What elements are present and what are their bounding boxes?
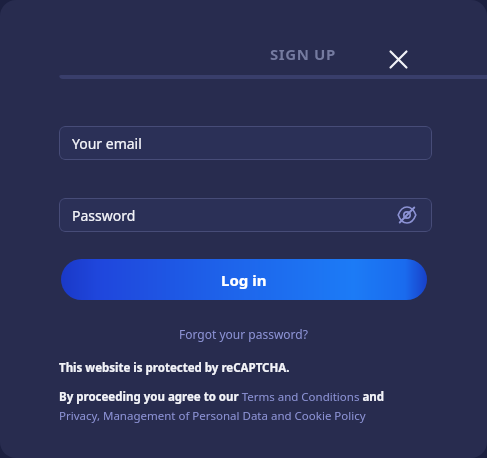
staticText: Password xyxy=(72,206,136,225)
button[interactable]: Close xyxy=(377,38,419,80)
button[interactable]: Your email xyxy=(59,126,432,160)
button[interactable]: Show password xyxy=(394,202,420,228)
button[interactable]: Password xyxy=(59,198,432,232)
staticText: By proceeding you agree to our Terms and… xyxy=(59,389,425,423)
button[interactable]: SIGN UP xyxy=(59,44,487,79)
button[interactable]: Forgot your password? xyxy=(175,324,312,344)
staticText: This website is protected by reCAPTCHA. xyxy=(59,360,290,376)
staticText: SIGN UP xyxy=(270,44,336,64)
staticText: Log in xyxy=(221,270,267,290)
button[interactable]: By proceeding you agree to our Terms and… xyxy=(59,389,425,423)
staticText: Forgot your password? xyxy=(179,326,308,342)
button[interactable]: Log in xyxy=(61,259,427,300)
staticText: Your email xyxy=(72,134,142,153)
